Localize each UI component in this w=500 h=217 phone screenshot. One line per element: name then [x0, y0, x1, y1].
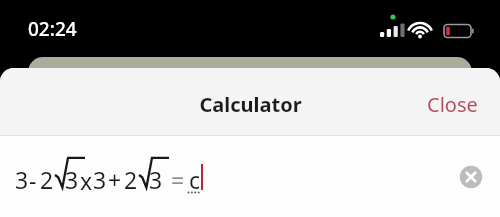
button[interactable]: Clear [458, 164, 484, 190]
staticText: Close [427, 91, 478, 118]
staticText: 2 [124, 164, 138, 195]
staticText: + [108, 164, 122, 195]
staticText: 3 [15, 164, 29, 195]
staticText: 3 [149, 164, 163, 195]
staticText: x [80, 165, 93, 196]
staticText: 3 [93, 164, 107, 195]
staticText: Calculator [199, 91, 302, 118]
staticText: 3 [65, 164, 79, 195]
staticText: 2 [40, 164, 54, 195]
staticText: c [189, 164, 201, 195]
button[interactable]: 3 [14, 152, 229, 202]
button[interactable]: Close [405, 81, 500, 128]
staticText: = [171, 164, 185, 195]
staticText: 02:24 [28, 16, 77, 42]
staticText: - [29, 164, 37, 195]
